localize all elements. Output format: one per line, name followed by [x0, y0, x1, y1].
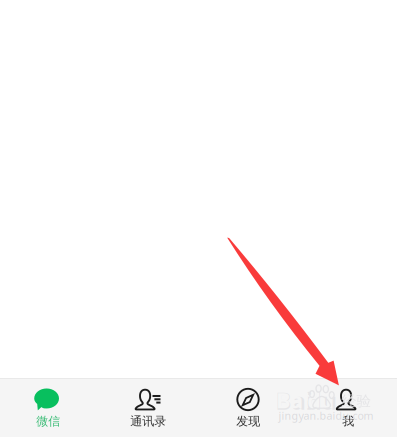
staticText: du	[307, 386, 334, 414]
button[interactable]: 发现	[198, 379, 298, 437]
staticText: Bai	[275, 384, 312, 416]
staticText: 我	[342, 414, 354, 429]
staticText: Bai	[276, 386, 309, 414]
button[interactable]: 通讯录	[98, 379, 198, 437]
staticText: 微信	[36, 414, 60, 429]
staticText: jingyan.baidu.com	[278, 408, 373, 423]
staticText: du	[306, 384, 337, 416]
staticText: 经验	[341, 392, 371, 410]
staticText: 发现	[236, 414, 260, 429]
staticText: 通讯录	[130, 414, 166, 429]
button[interactable]: 我	[298, 379, 397, 437]
button[interactable]: 微信	[0, 379, 98, 437]
